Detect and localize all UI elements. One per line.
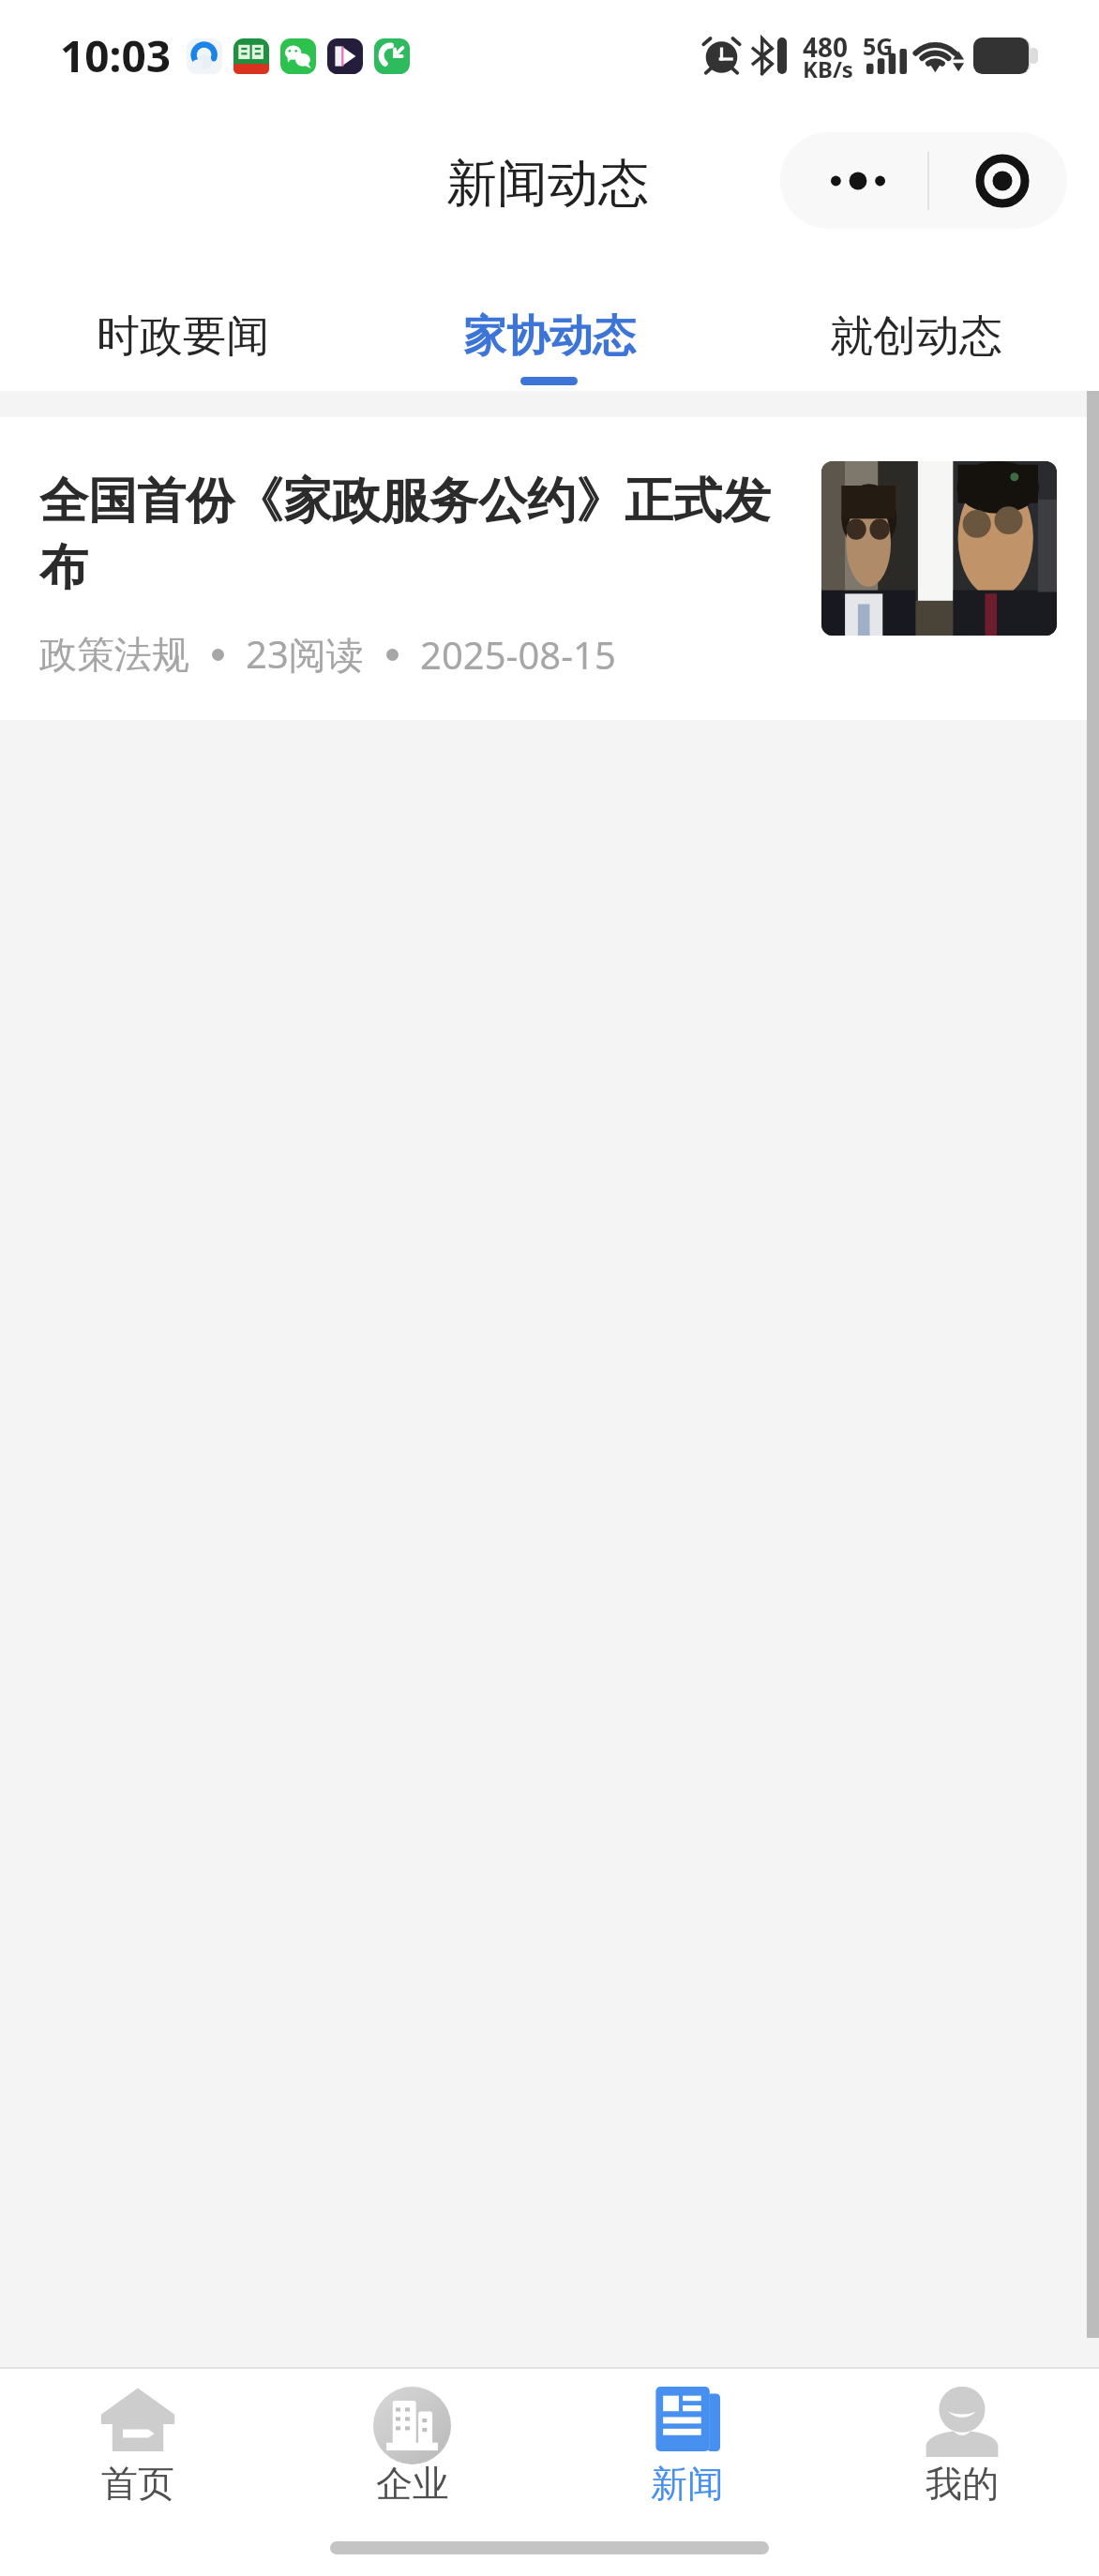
staticText: 时政要闻 bbox=[97, 309, 269, 364]
staticText: 就创动态 bbox=[830, 309, 1002, 364]
staticText: 我的 bbox=[926, 2461, 999, 2507]
button[interactable]: 全国首份《家政服务公约》正式发布 bbox=[0, 417, 1099, 720]
staticText: 首页 bbox=[101, 2461, 174, 2507]
staticText: 23阅读 bbox=[246, 628, 364, 680]
staticText: 家协动态 bbox=[463, 309, 636, 364]
staticText: 全国首份《家政服务公约》正式发布 bbox=[39, 471, 785, 598]
staticText: 新闻 bbox=[651, 2461, 724, 2507]
button[interactable]: 家协动态 bbox=[366, 261, 732, 391]
staticText: 新闻动态 bbox=[446, 152, 649, 216]
staticText: 10:03 bbox=[60, 26, 172, 85]
button[interactable]: 就创动态 bbox=[732, 261, 1099, 391]
button[interactable]: 新闻 bbox=[549, 2369, 824, 2576]
staticText: 5G bbox=[863, 30, 894, 62]
staticText: 2025-08-15 bbox=[420, 629, 616, 680]
button[interactable]: More options bbox=[780, 132, 927, 229]
staticText: 企业 bbox=[376, 2461, 449, 2507]
button[interactable]: 企业 bbox=[275, 2369, 549, 2576]
staticText: 480 bbox=[803, 29, 849, 65]
staticText: 政策法规 bbox=[39, 631, 189, 678]
button[interactable]: Close mini program bbox=[929, 132, 1067, 229]
button[interactable]: 时政要闻 bbox=[0, 261, 366, 391]
button[interactable]: 我的 bbox=[824, 2369, 1099, 2576]
button[interactable]: 首页 bbox=[0, 2369, 275, 2576]
staticText: KB/s bbox=[803, 53, 853, 84]
